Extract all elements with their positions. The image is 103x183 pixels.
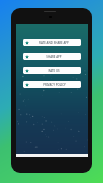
button[interactable]: PRIVACY POLICY bbox=[23, 81, 81, 88]
button[interactable]: SHARE APP bbox=[23, 53, 81, 60]
button[interactable]: RATE US bbox=[23, 67, 81, 74]
staticText: PRIVACY POLICY bbox=[43, 83, 66, 87]
staticText: RATE US bbox=[48, 69, 60, 73]
button[interactable]: RATE AND SHARE APP bbox=[23, 39, 81, 46]
staticText: SHARE APP bbox=[46, 55, 62, 59]
staticText: RATE AND SHARE APP bbox=[39, 41, 69, 45]
